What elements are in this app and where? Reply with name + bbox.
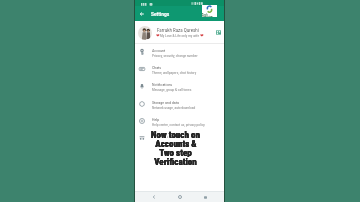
staticText: Now touch on <box>152 130 201 139</box>
staticText: Two step <box>160 148 193 157</box>
staticText: Account <box>152 48 166 53</box>
staticText: My Love & Life only my wife <box>160 34 200 38</box>
staticText: Now touch on <box>151 130 200 139</box>
staticText: Two step <box>159 148 192 157</box>
staticText: Now touch on <box>150 130 199 139</box>
staticText: Now touch on <box>152 129 201 138</box>
staticText: Now touch on <box>151 131 200 140</box>
staticText: Two step <box>159 147 192 156</box>
staticText: Accounts & <box>155 139 197 148</box>
staticText: Accounts & <box>156 138 198 147</box>
staticText: Theme, wallpapers, chat history <box>152 71 197 75</box>
staticText: Settings <box>151 11 170 18</box>
staticText: Two step <box>158 149 191 158</box>
staticText: Two step <box>159 148 192 157</box>
staticText: Accounts & <box>154 138 196 147</box>
staticText: Notifications <box>152 82 173 87</box>
staticText: Verification <box>155 156 198 165</box>
staticText: ❤ <box>200 33 204 38</box>
button[interactable]: Back <box>145 191 163 202</box>
staticText: Accounts & <box>155 139 197 148</box>
staticText: Two step <box>159 148 192 157</box>
button[interactable]: QR code <box>213 27 223 37</box>
staticText: Accounts & <box>155 139 197 148</box>
staticText: Verification <box>154 157 197 166</box>
button[interactable]: Chats <box>134 61 225 78</box>
staticText: Verification <box>155 158 198 167</box>
staticText: Verification <box>155 157 198 166</box>
staticText: Verification <box>153 158 196 167</box>
staticText: Verification <box>153 156 196 165</box>
button[interactable]: Notifications <box>134 78 225 95</box>
staticText: Now touch on <box>150 131 199 140</box>
staticText: Help <box>152 117 160 122</box>
button[interactable]: Account <box>134 44 225 61</box>
staticText: Invite a friend <box>152 134 174 139</box>
button[interactable]: Back <box>137 6 146 21</box>
staticText: Now touch on <box>152 131 201 140</box>
staticText: Now touch on <box>150 129 199 138</box>
staticText: Two step <box>160 149 193 158</box>
staticText: Now touch on <box>151 130 200 139</box>
staticText: Message, group & call tones <box>152 88 192 92</box>
staticText: Now touch on <box>151 130 200 139</box>
staticText: ❤ <box>156 33 160 38</box>
staticText: Verification <box>154 157 197 166</box>
button[interactable] <box>134 21 225 43</box>
staticText: Two step <box>158 148 191 157</box>
staticText: Now touch on <box>151 130 200 139</box>
button[interactable]: Invite a friend <box>134 130 225 147</box>
staticText: Verification <box>154 156 197 165</box>
staticText: Accounts & <box>155 139 197 148</box>
staticText: Verification <box>154 158 197 167</box>
staticText: Accounts & <box>156 140 198 149</box>
staticText: Two step <box>160 147 193 156</box>
staticText: Verification <box>154 157 197 166</box>
staticText: Accounts & <box>156 139 198 148</box>
button[interactable]: Storage and data <box>134 96 225 113</box>
staticText: Now touch on <box>151 130 200 139</box>
staticText: Storage and data <box>152 100 179 105</box>
staticText: Verification <box>153 157 196 166</box>
staticText: Help centre, contact us, privacy policy <box>152 123 205 127</box>
staticText: Two step <box>159 149 192 158</box>
staticText: Accounts & <box>154 139 196 148</box>
staticText: Verification <box>154 157 197 166</box>
staticText: Accounts & <box>154 140 196 149</box>
staticText: Verification <box>154 157 197 166</box>
button[interactable]: Recent apps <box>196 191 214 202</box>
staticText: Two step <box>159 148 192 157</box>
staticText: Tech Overview <box>202 13 217 17</box>
staticText: Accounts & <box>155 140 197 149</box>
button[interactable]: Help <box>134 113 225 130</box>
staticText: Farrukh Raza Qureshi <box>157 27 199 33</box>
staticText: Now touch on <box>151 129 200 138</box>
staticText: Two step <box>159 148 192 157</box>
staticText: Chats <box>152 65 162 70</box>
staticText: Accounts & <box>155 139 197 148</box>
staticText: Network usage, auto-download <box>152 106 196 110</box>
staticText: Accounts & <box>155 138 197 147</box>
staticText: Privacy, security, change number <box>152 54 198 58</box>
button[interactable]: Home <box>171 191 189 202</box>
staticText: Two step <box>158 147 191 156</box>
